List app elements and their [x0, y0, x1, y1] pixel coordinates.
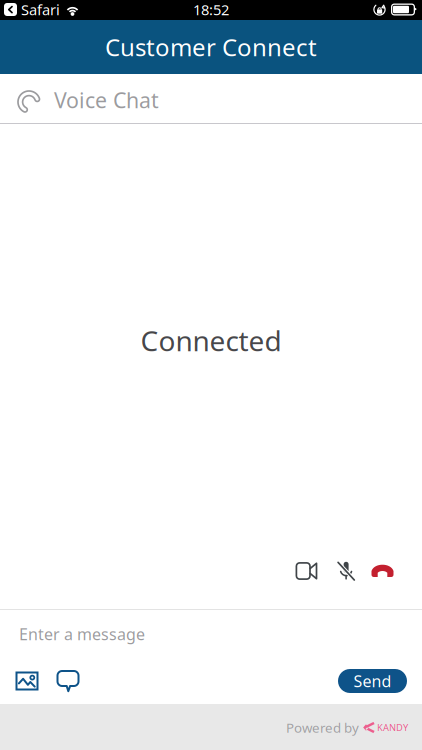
staticText: Customer Connect: [105, 31, 317, 63]
staticText: Send: [353, 670, 391, 692]
staticText: Powered by: [286, 719, 359, 736]
staticText: Connected: [140, 322, 281, 359]
staticText: Safari: [21, 0, 60, 19]
button[interactable]: End call: [365, 557, 400, 585]
staticText: 18:52: [193, 0, 229, 19]
staticText: Enter a message: [19, 623, 145, 645]
button[interactable]: Video: [285, 557, 328, 585]
staticText: Voice Chat: [54, 86, 159, 114]
button[interactable]: Chat: [46, 666, 90, 696]
staticText: KANDY: [377, 721, 408, 734]
button[interactable]: Send photo: [8, 666, 46, 696]
button[interactable]: Mute: [328, 557, 365, 585]
button[interactable]: Send: [338, 669, 407, 693]
